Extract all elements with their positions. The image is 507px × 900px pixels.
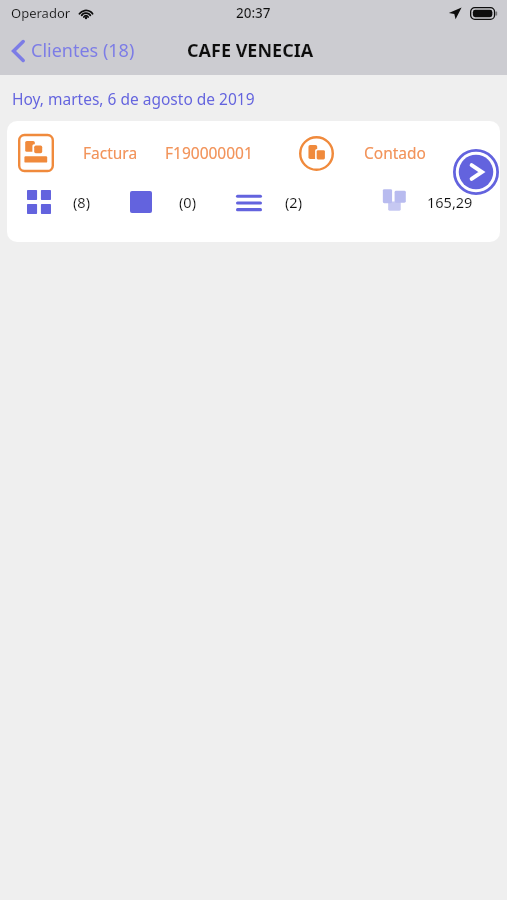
staticText: (2) xyxy=(285,192,302,212)
button[interactable]: Abrir documento xyxy=(453,149,499,195)
button[interactable]: Cobros xyxy=(382,187,410,214)
staticText: Factura xyxy=(83,142,138,163)
staticText: Clientes (18) xyxy=(31,38,135,63)
button[interactable]: Documento xyxy=(299,136,334,171)
staticText: 165,29 xyxy=(427,192,473,212)
button[interactable]: Tipo de documento xyxy=(7,121,500,242)
staticText: (8) xyxy=(73,192,90,212)
staticText: F190000001 xyxy=(165,142,253,163)
staticText: (0) xyxy=(179,192,196,212)
staticText: CAFE VENECIA xyxy=(187,38,314,63)
button[interactable]: Tipo de documento xyxy=(16,133,56,173)
staticText: Operador xyxy=(11,4,71,22)
staticText: 20:37 xyxy=(236,4,271,22)
button[interactable]: Artículos xyxy=(27,190,51,214)
button[interactable]: Líneas xyxy=(236,193,262,211)
staticText: Contado xyxy=(364,142,426,163)
button[interactable]: Bloques xyxy=(130,191,152,213)
staticText: Hoy, martes, 6 de agosto de 2019 xyxy=(12,88,255,109)
button[interactable]: Clientes (18) xyxy=(8,33,139,68)
